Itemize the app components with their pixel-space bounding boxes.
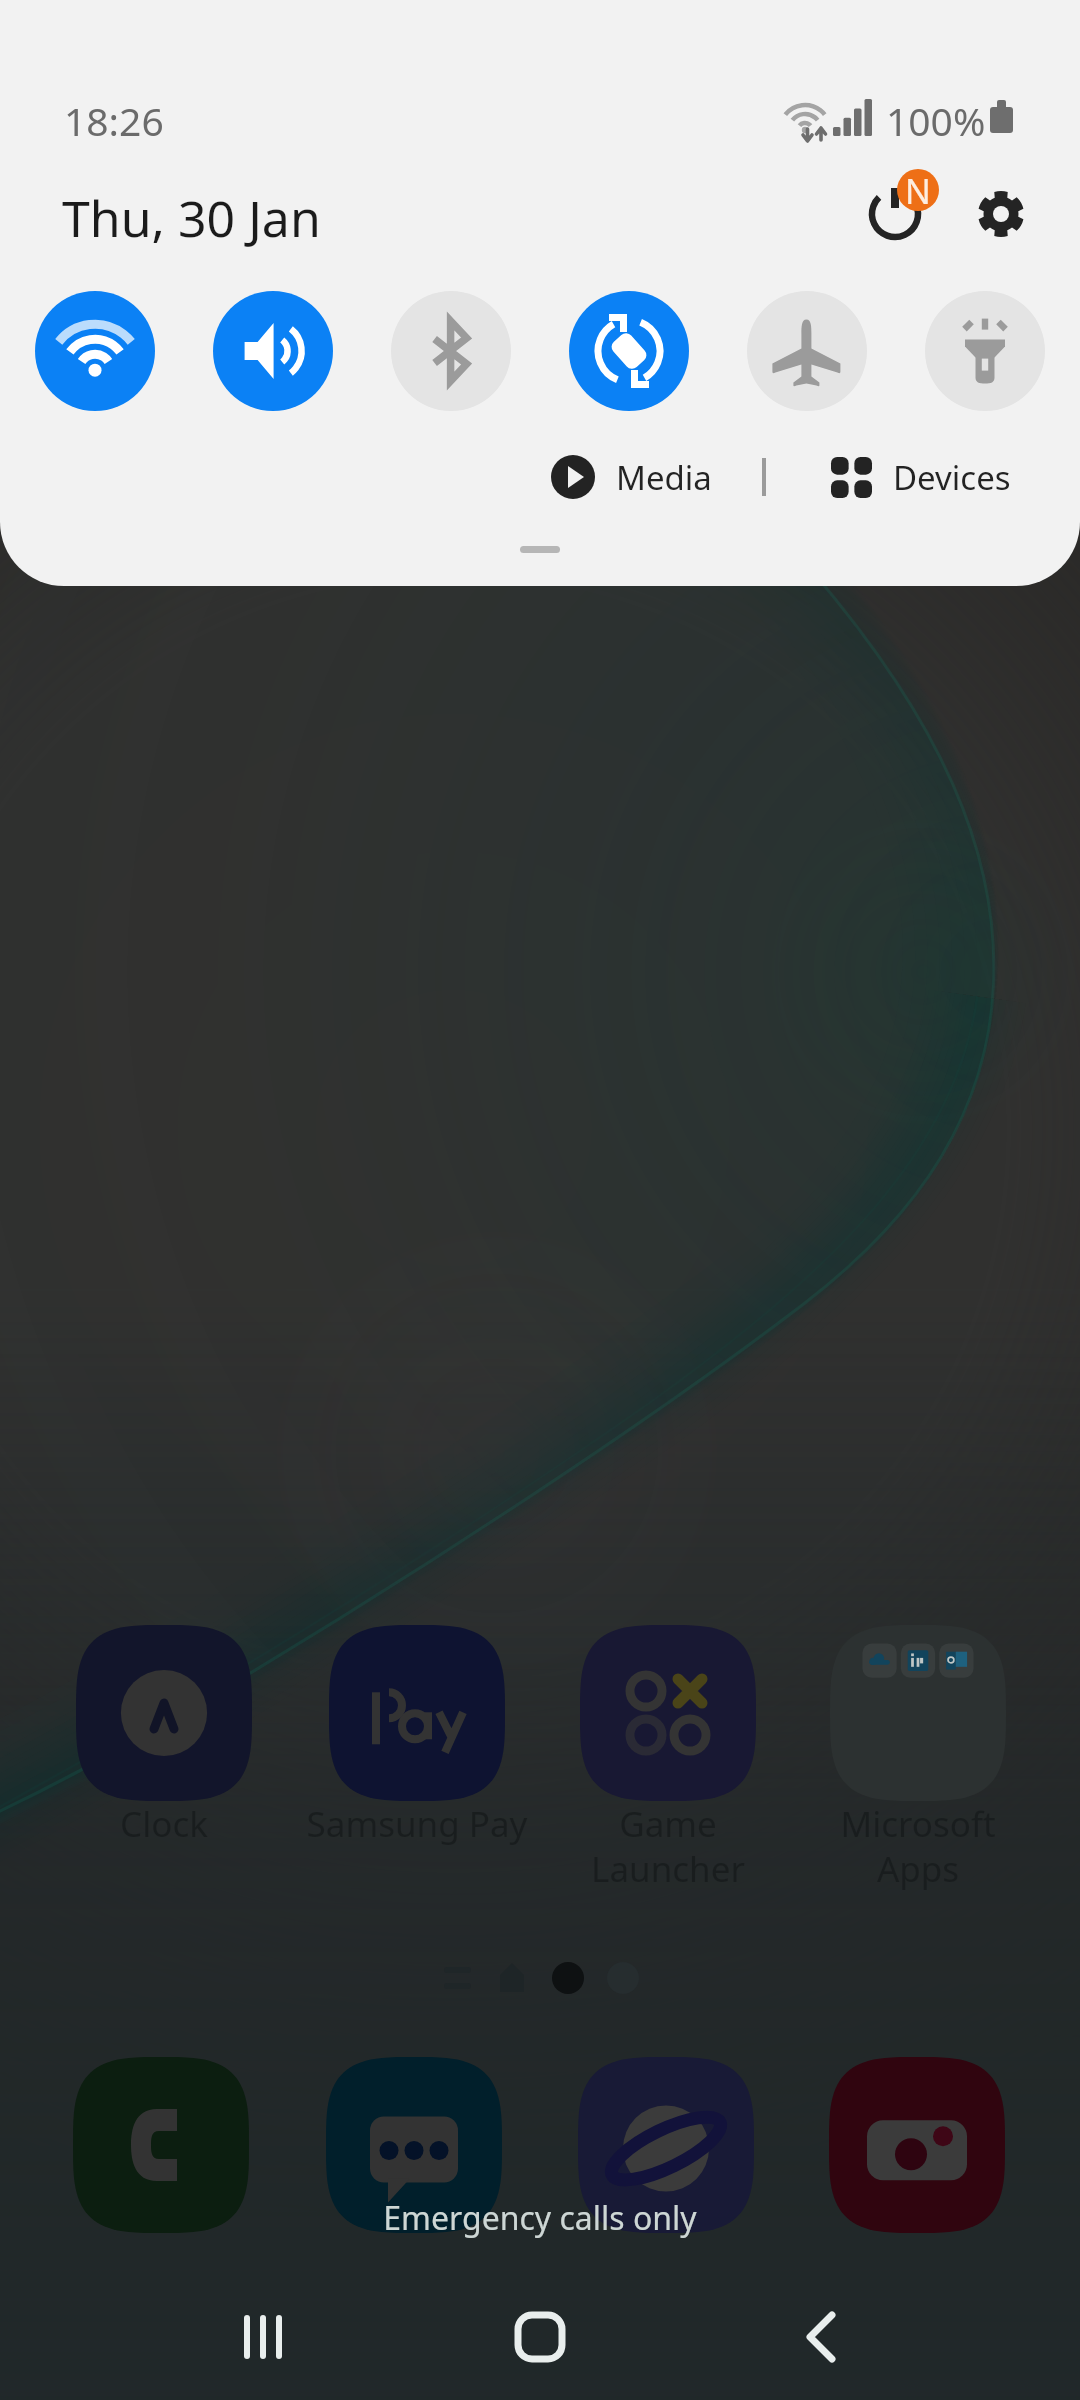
button[interactable]: Power off (843, 162, 947, 266)
button[interactable]: Devices (831, 448, 1011, 506)
button[interactable]: Flight mode (747, 291, 867, 411)
button[interactable]: Media (551, 448, 712, 506)
staticText: N (905, 169, 931, 210)
button[interactable]: Camera (829, 2057, 1005, 2233)
staticText: 100% (886, 94, 986, 147)
button[interactable]: Recents (193, 2277, 333, 2397)
button[interactable]: Messages (326, 2057, 502, 2233)
button[interactable]: Microsoft Apps (830, 1625, 1006, 1801)
button[interactable]: Bluetooth (391, 291, 511, 411)
button[interactable]: Internet (578, 2057, 754, 2233)
button[interactable]: Auto rotate (569, 291, 689, 411)
button[interactable]: Clock (76, 1625, 252, 1801)
staticText: Samsung Pay (277, 1800, 557, 1848)
button[interactable]: Sound (213, 291, 333, 411)
staticText: Thu, 30 Jan (62, 184, 321, 252)
button[interactable]: Home (470, 2277, 610, 2397)
staticText: 18:26 (64, 94, 164, 147)
button[interactable]: Flashlight (925, 291, 1045, 411)
button[interactable]: Samsung Pay (329, 1625, 505, 1801)
staticText: Emergency calls only (0, 2196, 1080, 2240)
button[interactable]: Phone (73, 2057, 249, 2233)
button[interactable]: Wi-Fi (35, 291, 155, 411)
staticText: Devices (893, 455, 1011, 500)
staticText: Media (616, 455, 712, 500)
button[interactable]: Settings (949, 162, 1053, 266)
button[interactable]: Game Launcher (580, 1625, 756, 1801)
button[interactable]: Back (750, 2277, 890, 2397)
